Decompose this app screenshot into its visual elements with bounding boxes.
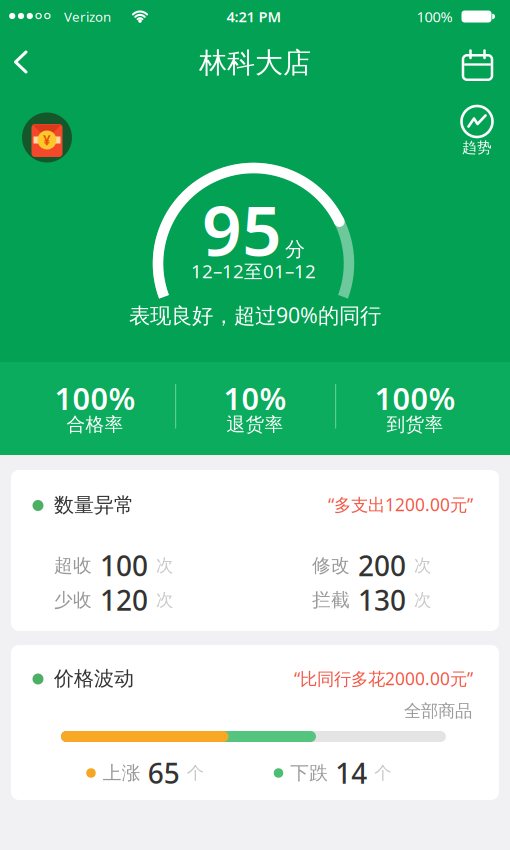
staticText: 次 [414, 589, 431, 611]
staticText: 12–12至01–12 [191, 259, 316, 283]
button[interactable]: 价格波动 [11, 645, 499, 800]
staticText: 超收 [54, 554, 92, 577]
staticText: Verizon [64, 8, 111, 25]
staticText: 个 [374, 762, 391, 784]
staticText: 10% [223, 378, 286, 418]
staticText: 个 [187, 762, 204, 784]
staticText: 100% [54, 378, 135, 418]
staticText: 120 [100, 581, 148, 619]
staticText: 合格率 [66, 413, 123, 436]
button[interactable]: Rewards [21, 111, 73, 163]
staticText: 表现良好，超过90%的同行 [129, 301, 381, 329]
staticText: 次 [414, 555, 431, 576]
staticText: 100 [100, 547, 148, 584]
staticText: 修改 [312, 554, 350, 577]
staticText: 95 [202, 183, 282, 275]
staticText: 65 [148, 754, 180, 792]
staticText: 14 [335, 754, 367, 792]
staticText: 分 [285, 237, 305, 262]
staticText: 少收 [54, 588, 92, 611]
button[interactable]: Calendar [455, 41, 499, 85]
staticText: 130 [358, 581, 406, 619]
staticText: 价格波动 [54, 666, 134, 691]
staticText: 200 [358, 547, 406, 584]
staticText: 次 [156, 589, 173, 611]
staticText: 全部商品 [404, 700, 472, 722]
staticText: 上涨 [103, 761, 141, 784]
staticText: 林科大店 [199, 46, 311, 80]
staticText: 4:21 PM [226, 7, 281, 26]
staticText: 下跌 [290, 761, 328, 784]
staticText: 次 [156, 555, 173, 576]
staticText: 100% [416, 7, 452, 26]
button[interactable]: Back [0, 43, 40, 81]
staticText: 拦截 [312, 588, 350, 611]
staticText: “多支出1200.00元” [328, 493, 473, 516]
button[interactable]: 数量异常 [11, 470, 499, 631]
staticText: “比同行多花2000.00元” [294, 667, 473, 690]
staticText: 数量异常 [54, 493, 134, 517]
staticText: ¥ [43, 131, 51, 149]
staticText: 到货率 [386, 413, 443, 436]
staticText: 100% [374, 378, 455, 418]
staticText: 趋势 [462, 138, 492, 156]
button[interactable]: 趋势 [454, 106, 500, 158]
staticText: 退货率 [226, 413, 283, 436]
